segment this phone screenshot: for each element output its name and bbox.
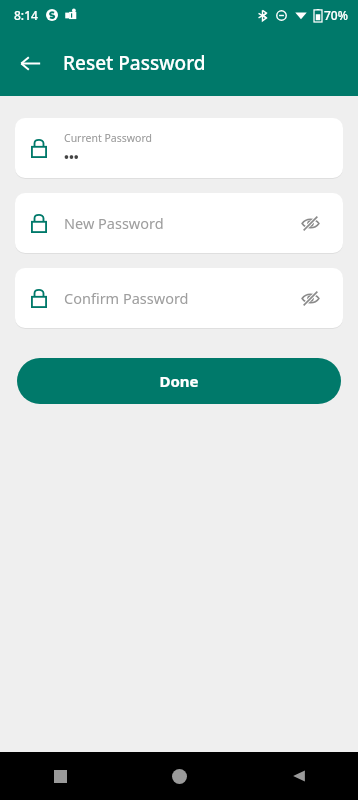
button[interactable]: Recent apps (0, 752, 120, 800)
staticText: Confirm Password (64, 288, 293, 308)
button[interactable]: New Password (15, 193, 343, 253)
button[interactable]: Back (239, 752, 358, 800)
staticText: Reset Password (63, 50, 206, 76)
button[interactable]: Show password (293, 281, 327, 315)
staticText: 70% (324, 7, 348, 23)
staticText: Current Password (64, 131, 153, 145)
button[interactable]: Home (120, 752, 239, 800)
button[interactable]: Done (17, 358, 341, 404)
staticText: Done (159, 371, 199, 391)
button[interactable]: Show password (293, 206, 327, 240)
button[interactable]: Confirm Password (15, 268, 343, 328)
staticText: 8:14 (14, 7, 38, 23)
button[interactable]: Back (10, 43, 50, 83)
staticText: ••• (64, 148, 79, 166)
button[interactable]: Current Password (15, 118, 343, 178)
staticText: New Password (64, 213, 293, 233)
